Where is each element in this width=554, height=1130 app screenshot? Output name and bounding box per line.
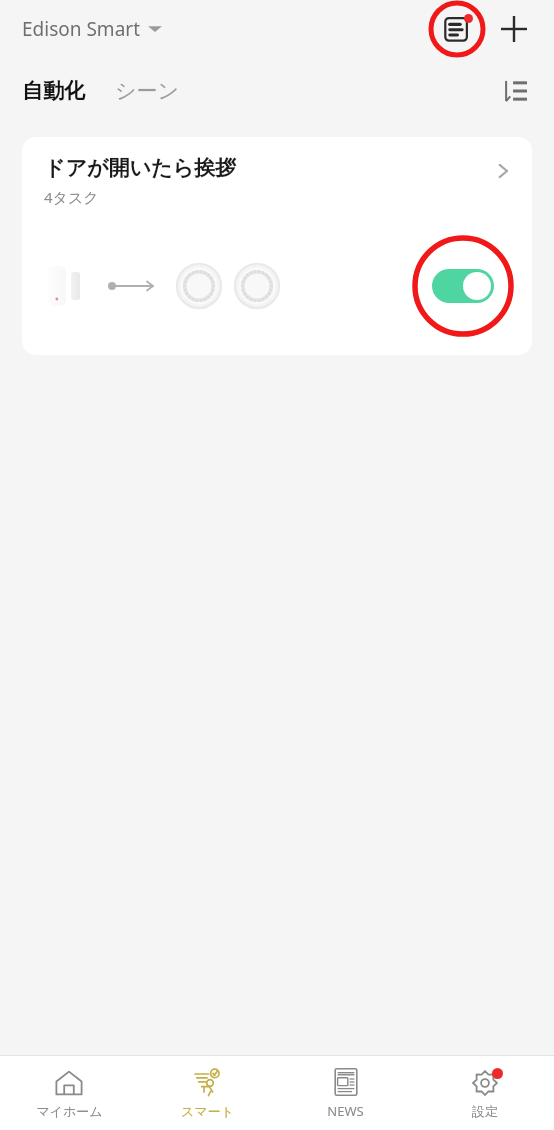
staticText: マイホーム <box>36 1103 103 1119</box>
button[interactable]: シーン <box>111 72 183 110</box>
staticText: 設定 <box>472 1103 498 1119</box>
button[interactable]: Notes <box>428 0 486 58</box>
button[interactable]: マイホーム <box>0 1056 138 1130</box>
button[interactable]: Sort <box>494 70 536 112</box>
staticText: スマート <box>181 1103 234 1119</box>
staticText: NEWS <box>327 1102 364 1120</box>
button[interactable]: スマート <box>138 1056 276 1130</box>
button[interactable]: ドアが開いたら挨拶 <box>22 137 532 355</box>
staticText: 自動化 <box>22 78 85 104</box>
staticText: ドアが開いたら挨拶 <box>44 155 236 181</box>
staticText: Edison Smart <box>22 16 140 42</box>
button[interactable]: 自動化 <box>18 72 89 110</box>
button[interactable]: NEWS <box>276 1056 415 1130</box>
staticText: シーン <box>115 78 179 104</box>
button[interactable]: Edison Smart <box>22 10 162 48</box>
button[interactable]: Add <box>492 7 536 51</box>
button[interactable]: Enable automation <box>408 231 518 341</box>
staticText: 4タスク <box>44 187 99 207</box>
button[interactable]: 設定 <box>415 1056 554 1130</box>
